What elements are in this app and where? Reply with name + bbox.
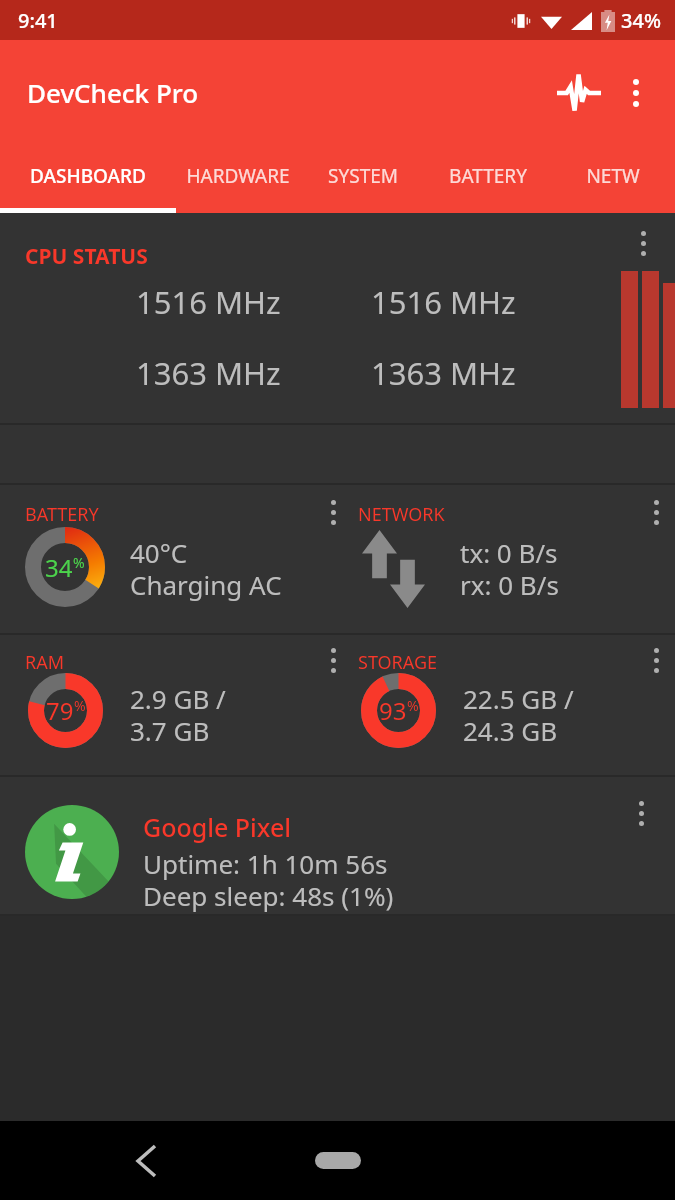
staticText: 40°C — [130, 535, 188, 570]
staticText: NETW — [586, 163, 640, 189]
staticText: 3.7 GB — [130, 713, 210, 748]
staticText: % — [74, 696, 86, 715]
button[interactable]: More options — [311, 638, 355, 682]
staticText: HARDWARE — [186, 163, 290, 189]
staticText: 93 — [379, 694, 407, 727]
staticText: 1516 MHz — [371, 281, 516, 323]
button[interactable]: Google Pixel — [0, 777, 675, 914]
button[interactable]: More options — [634, 638, 675, 682]
button[interactable]: CPU STATUS — [0, 213, 675, 423]
button[interactable]: More options — [619, 791, 663, 835]
staticText: BATTERY — [449, 163, 527, 189]
staticText: 1363 MHz — [136, 352, 281, 394]
staticText: NETWORK — [358, 502, 445, 527]
staticText: STORAGE — [358, 650, 438, 675]
staticText: 1363 MHz — [371, 352, 516, 394]
staticText: 24.3 GB — [463, 713, 558, 748]
staticText: DASHBOARD — [30, 163, 146, 189]
button[interactable]: More options — [609, 66, 663, 120]
staticText: SYSTEM — [328, 163, 398, 189]
staticText: Google Pixel — [143, 810, 292, 844]
button[interactable]: NETWORK — [337, 485, 675, 633]
button[interactable]: Monitor — [551, 65, 607, 121]
staticText: 79 — [46, 694, 74, 727]
staticText: 2.9 GB / — [130, 681, 226, 716]
staticText: CPU STATUS — [25, 242, 148, 271]
staticText: % — [73, 553, 85, 572]
staticText: Charging AC — [130, 567, 282, 602]
button[interactable]: More options — [311, 490, 355, 534]
button[interactable]: Back — [120, 1135, 172, 1187]
staticText: 34% — [621, 7, 661, 34]
staticText: rx: 0 B/s — [460, 567, 559, 602]
button[interactable]: DASHBOARD — [0, 145, 176, 207]
button[interactable]: HARDWARE — [176, 145, 300, 207]
staticText: DevCheck Pro — [27, 75, 199, 110]
staticText: RAM — [25, 650, 65, 675]
staticText: BATTERY — [25, 502, 99, 527]
staticText: 34 — [45, 551, 73, 584]
staticText: 22.5 GB / — [463, 681, 574, 716]
button[interactable]: More options — [634, 490, 675, 534]
button[interactable]: BATTERY — [425, 145, 550, 207]
button[interactable]: STORAGE — [337, 635, 675, 775]
button[interactable]: More options — [621, 221, 665, 265]
staticText: 9:41 — [18, 7, 58, 34]
button[interactable]: Home — [315, 1152, 361, 1169]
staticText: Uptime: 1h 10m 56s — [143, 846, 388, 881]
button[interactable]: SYSTEM — [300, 145, 425, 207]
staticText: 1516 MHz — [136, 281, 281, 323]
staticText: % — [407, 696, 419, 715]
button[interactable]: RAM — [0, 635, 337, 775]
button[interactable]: NETW — [550, 145, 675, 207]
staticText: Deep sleep: 48s (1%) — [143, 878, 394, 913]
staticText: tx: 0 B/s — [460, 535, 558, 570]
button[interactable]: BATTERY — [0, 485, 337, 633]
